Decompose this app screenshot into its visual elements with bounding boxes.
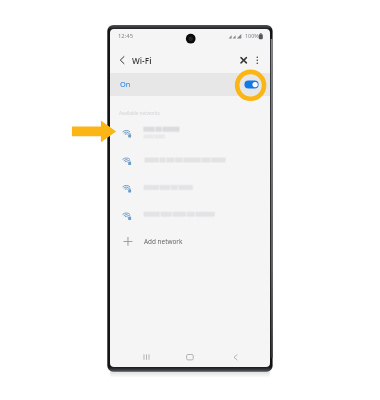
button[interactable]: Recent apps	[123, 347, 167, 367]
staticText: Add network	[144, 237, 183, 246]
button[interactable]: Home	[168, 347, 212, 367]
staticText: 12:45	[118, 32, 134, 40]
button[interactable]: More options	[251, 51, 266, 69]
button[interactable]: Add network	[110, 228, 270, 255]
button[interactable]: Wi-Fi, On	[110, 73, 270, 96]
button[interactable]: Back	[213, 347, 257, 367]
button[interactable]: Navigate up	[115, 51, 133, 69]
button[interactable]: Wi-Fi network	[110, 173, 270, 200]
button[interactable]: Close	[236, 51, 251, 69]
button[interactable]: Wi-Fi network	[110, 146, 270, 173]
staticText: On	[120, 79, 131, 89]
staticText: Wi-Fi	[132, 55, 152, 66]
staticText: 100%	[245, 32, 259, 39]
button[interactable]: Wi-Fi network	[110, 201, 270, 228]
button[interactable]: Wi-Fi network	[110, 118, 270, 145]
staticText: Available networks	[119, 110, 160, 116]
